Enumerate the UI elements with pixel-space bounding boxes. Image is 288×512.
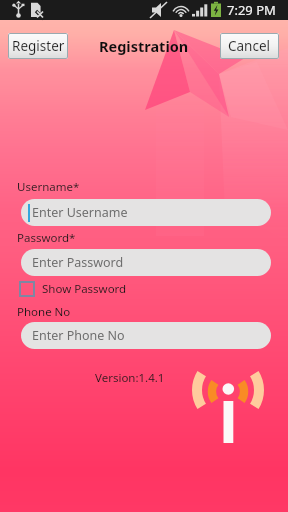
staticText: Register (12, 37, 65, 55)
staticText: Enter Username (32, 204, 128, 221)
staticText: Cancel (228, 37, 271, 55)
button[interactable]: Show Password (19, 281, 133, 297)
staticText: Enter Password (32, 254, 124, 271)
staticText: Password* (17, 230, 76, 246)
staticText: Username* (17, 179, 80, 195)
staticText: Version:1.4.1 (95, 370, 165, 386)
staticText: 7:29 PM (227, 1, 276, 19)
button[interactable]: Enter Username (21, 199, 271, 226)
button[interactable]: Register (8, 33, 68, 59)
staticText: Registration (99, 36, 189, 56)
button[interactable]: Enter Password (21, 249, 271, 276)
staticText: Show Password (42, 281, 127, 297)
button[interactable]: Enter Phone No (21, 322, 271, 349)
other: App logo (188, 368, 268, 448)
staticText: Enter Phone No (32, 327, 125, 344)
staticText: Phone No (17, 304, 71, 320)
button[interactable]: Cancel (220, 33, 279, 59)
